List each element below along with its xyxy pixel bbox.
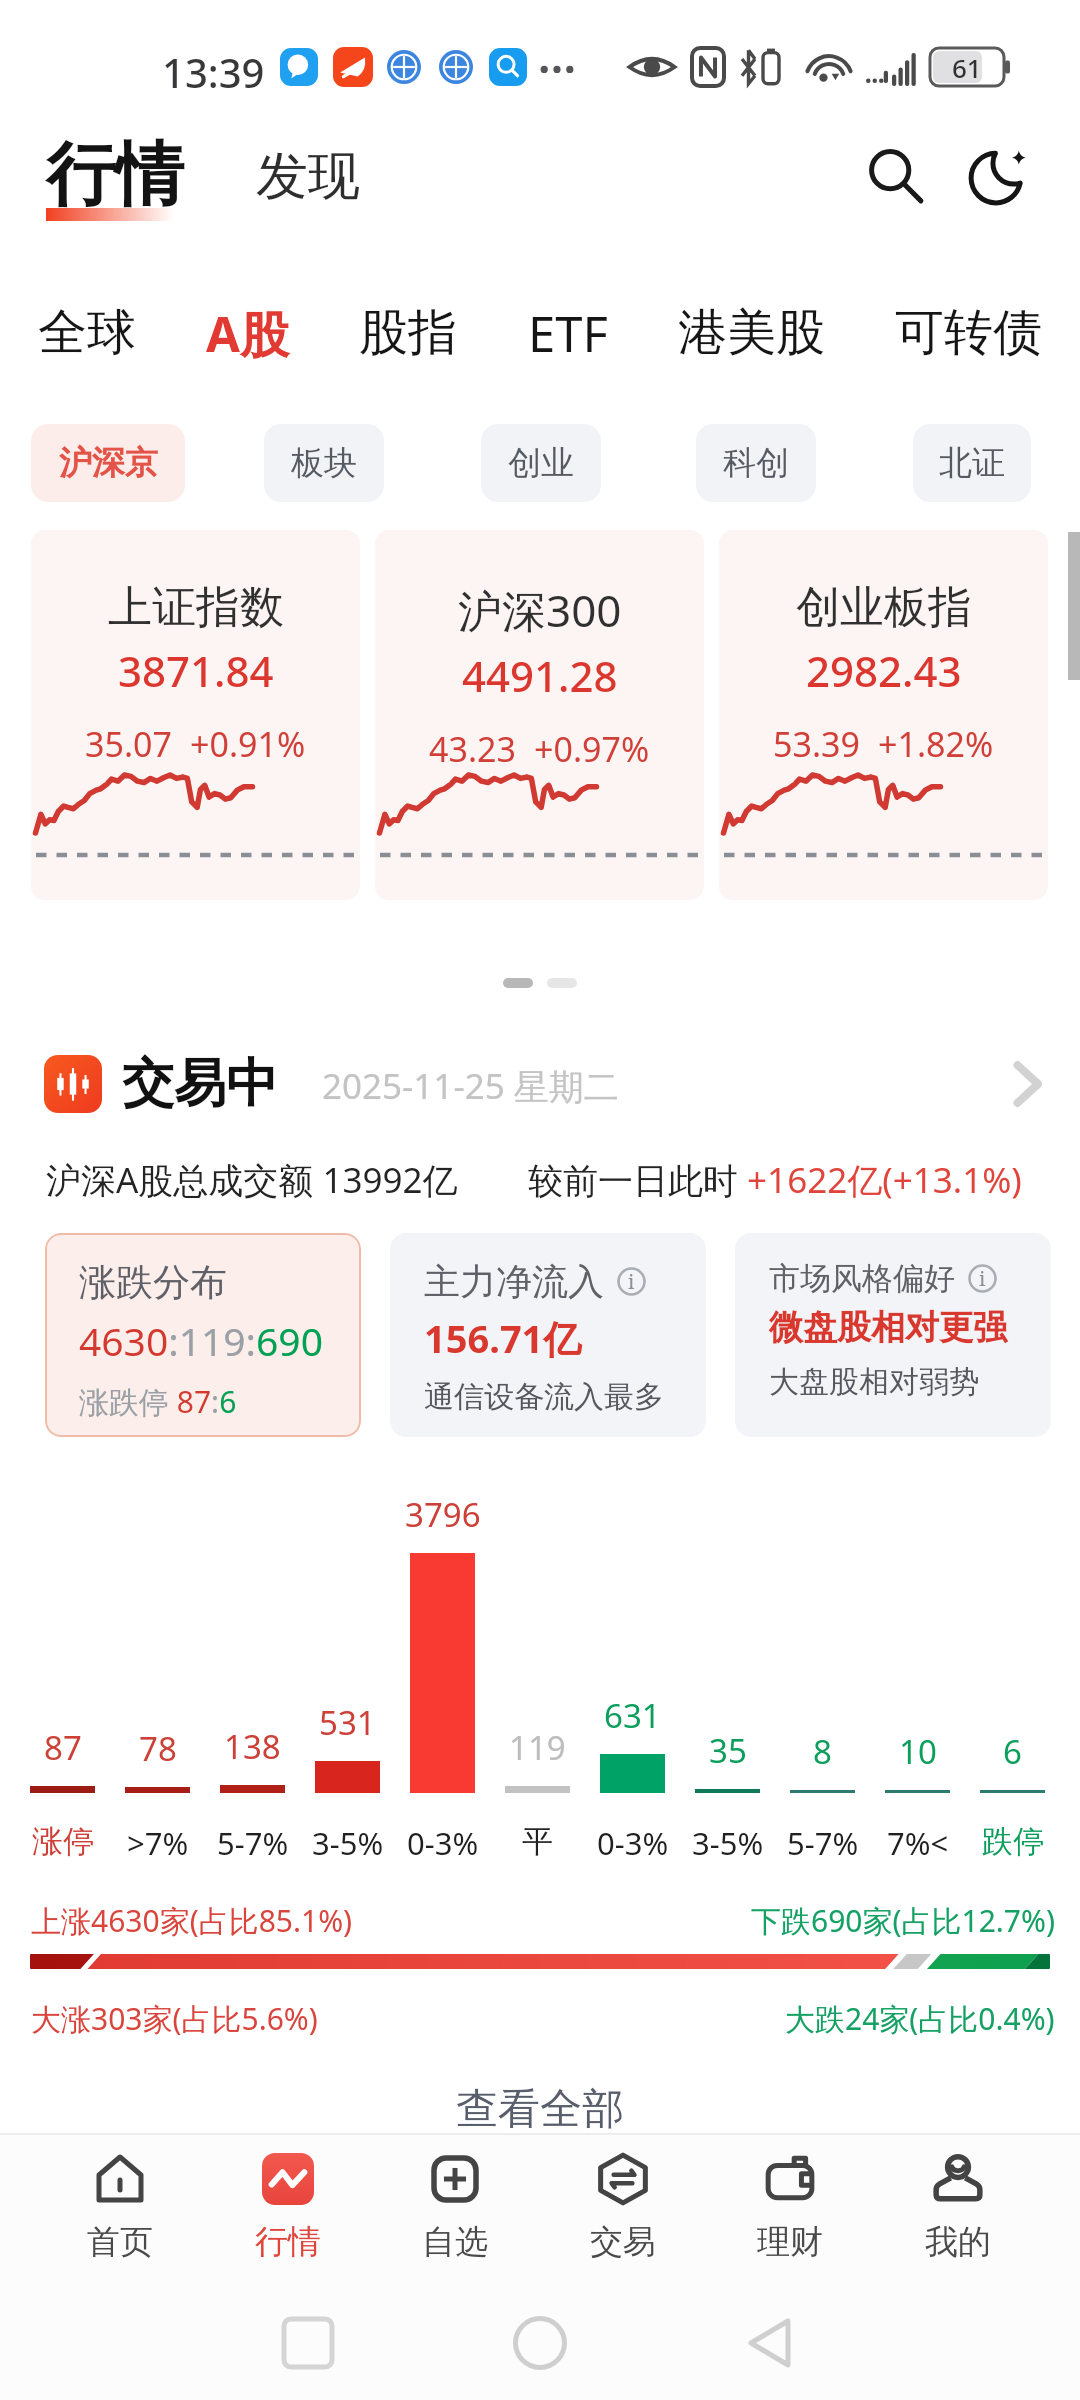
button[interactable]: 交易中	[0, 1048, 1080, 1120]
button[interactable]: 理财	[706, 2133, 873, 2285]
staticText: 发现	[256, 144, 360, 210]
staticText: 行情	[255, 2221, 321, 2263]
staticText: 156.71亿	[424, 1312, 582, 1364]
staticText: 2025-11-25 星期二	[322, 1062, 619, 1110]
staticText: 主力净流入	[424, 1259, 604, 1304]
staticText: 138	[224, 1724, 281, 1769]
staticText: 10	[899, 1729, 937, 1774]
staticText: 股指	[359, 302, 457, 364]
staticText: 北证	[939, 442, 1005, 484]
staticText: 13:39	[162, 45, 265, 89]
button[interactable]: Dark mode	[964, 140, 1034, 210]
staticText: >7%	[127, 1822, 189, 1864]
staticText: 43.23	[429, 726, 516, 772]
staticText: 首页	[87, 2221, 153, 2263]
staticText: 可转债	[895, 302, 1042, 364]
staticText: 2982.43	[806, 642, 962, 699]
button[interactable]: 港美股	[678, 302, 825, 364]
staticText: 大盘股相对弱势	[769, 1363, 979, 1401]
staticText: 微盘股相对更强	[769, 1306, 1007, 1349]
staticText: 涨跌停 87:6	[79, 1381, 237, 1422]
staticText: 3796	[405, 1492, 481, 1537]
staticText: 5-7%	[217, 1822, 289, 1864]
staticText: 理财	[757, 2221, 823, 2263]
button[interactable]: 科创	[696, 424, 816, 502]
staticText: 查看全部	[456, 2083, 624, 2136]
staticText: 87	[44, 1725, 82, 1770]
button[interactable]: Search	[860, 140, 930, 210]
button[interactable]: 沪深京	[31, 424, 185, 502]
staticText: 沪深A股总成交额 13992亿	[46, 1156, 458, 1204]
staticText: 涨停	[32, 1822, 94, 1861]
staticText: 35.07	[85, 721, 172, 767]
staticText: 行情	[46, 132, 184, 219]
button[interactable]: 上证指数	[31, 530, 360, 900]
staticText: 全球	[38, 302, 136, 364]
button[interactable]: 主力净流入	[390, 1233, 706, 1437]
staticText: 3-5%	[692, 1822, 764, 1864]
staticText: 创业	[508, 442, 574, 484]
button[interactable]: 交易	[539, 2133, 706, 2285]
button[interactable]: 涨跌分布	[45, 1233, 361, 1437]
button[interactable]: A股	[206, 300, 289, 367]
staticText: i	[979, 1265, 986, 1292]
button[interactable]: 我的	[874, 2133, 1041, 2285]
staticText: 7%<	[887, 1822, 949, 1864]
button[interactable]: 创业板指	[719, 530, 1048, 900]
staticText: 港美股	[678, 302, 825, 364]
staticText: 3871.84	[118, 642, 274, 699]
staticText: 交易中	[122, 1051, 278, 1117]
button[interactable]: 全球	[38, 302, 136, 364]
staticText: 119	[509, 1725, 566, 1770]
staticText: +0.97%	[534, 726, 650, 772]
staticText: 沪深300	[458, 580, 622, 640]
staticText: 创业板指	[796, 580, 972, 635]
staticText: +1.82%	[878, 721, 994, 767]
button[interactable]: 行情	[204, 2133, 371, 2285]
staticText: 0-3%	[407, 1822, 479, 1864]
button[interactable]: 可转债	[895, 302, 1042, 364]
staticText: 6	[1003, 1729, 1022, 1774]
staticText: 科创	[723, 442, 789, 484]
staticText: i	[628, 1268, 635, 1295]
staticText: 自选	[422, 2221, 488, 2263]
button[interactable]: 首页	[36, 2133, 203, 2285]
staticText: 4491.28	[462, 647, 618, 704]
staticText: 4630:119:690	[79, 1314, 323, 1367]
staticText: 板块	[291, 442, 357, 484]
staticText: 8	[813, 1729, 832, 1774]
staticText: 较前一日此时 +1622亿(+13.1%)	[528, 1156, 1022, 1204]
staticText: ETF	[528, 300, 608, 367]
staticText: 61	[952, 50, 982, 85]
staticText: 78	[139, 1726, 177, 1771]
staticText: 35	[709, 1728, 747, 1773]
button[interactable]: 查看全部	[0, 2079, 1080, 2139]
button[interactable]: 市场风格偏好	[735, 1233, 1051, 1437]
button[interactable]: 沪深300	[375, 530, 704, 900]
staticText: 上涨4630家(占比85.1%)	[31, 1900, 353, 1941]
staticText: 平	[522, 1822, 553, 1861]
staticText: 631	[604, 1693, 661, 1738]
staticText: +0.91%	[190, 721, 306, 767]
staticText: 跌停	[982, 1822, 1044, 1861]
staticText: A股	[206, 300, 289, 367]
button[interactable]: 创业	[481, 424, 601, 502]
staticText: 5-7%	[787, 1822, 859, 1864]
staticText: 531	[319, 1700, 376, 1745]
button[interactable]: ETF	[528, 300, 608, 367]
staticText: 市场风格偏好	[769, 1259, 955, 1298]
staticText: 涨跌分布	[79, 1259, 227, 1306]
staticText: 上证指数	[108, 580, 284, 635]
button[interactable]: 北证	[913, 424, 1031, 502]
staticText: 我的	[925, 2221, 991, 2263]
staticText: 53.39	[773, 721, 860, 767]
button[interactable]: 板块	[264, 424, 384, 502]
staticText: 大跌24家(占比0.4%)	[785, 1998, 1055, 2039]
button[interactable]: 股指	[359, 302, 457, 364]
staticText: 通信设备流入最多	[424, 1378, 664, 1416]
staticText: 3-5%	[312, 1822, 384, 1864]
staticText: 0-3%	[597, 1822, 669, 1864]
button[interactable]: 自选	[371, 2133, 538, 2285]
staticText: 交易	[590, 2221, 656, 2263]
staticText: 大涨303家(占比5.6%)	[31, 1998, 318, 2039]
